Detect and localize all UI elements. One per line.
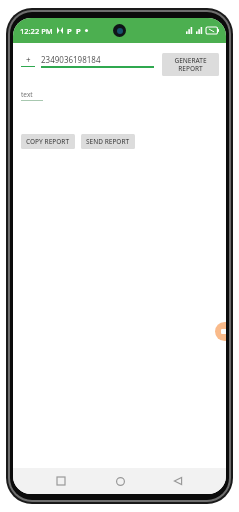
button[interactable]: Recent apps [50, 470, 72, 492]
staticText: 2349036198184 [41, 54, 101, 65]
button[interactable]: 2349036198184 [41, 53, 154, 68]
button[interactable]: Home [109, 470, 131, 492]
staticText: P [76, 26, 81, 36]
staticText: GENERATE REPORT [174, 56, 207, 73]
button[interactable]: Floating recorder [215, 322, 226, 341]
button[interactable]: text [21, 90, 43, 101]
staticText: + [26, 54, 31, 65]
button[interactable]: SEND REPORT [81, 134, 135, 149]
staticText: COPY REPORT [26, 137, 70, 146]
button[interactable]: Back [167, 470, 189, 492]
button[interactable]: + [21, 53, 35, 67]
staticText: P [67, 26, 72, 36]
button[interactable]: GENERATE REPORT [162, 53, 219, 76]
staticText: SEND REPORT [86, 137, 130, 146]
staticText: text [21, 90, 33, 99]
staticText: 12:22 PM [20, 26, 53, 36]
button[interactable]: COPY REPORT [21, 134, 75, 149]
